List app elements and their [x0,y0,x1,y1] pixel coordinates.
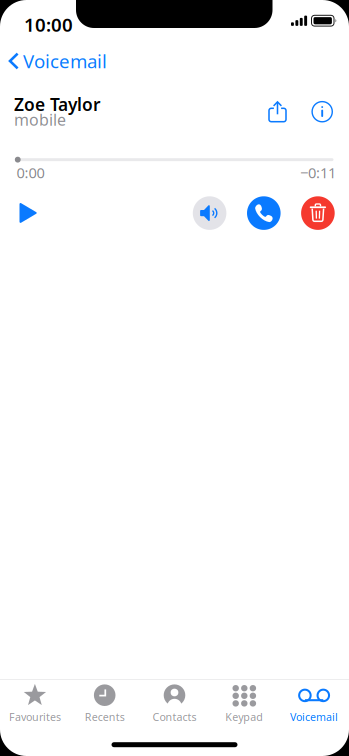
button[interactable]: Keypad [209,680,279,728]
button[interactable]: Contacts [140,680,209,728]
staticText: Keypad [225,710,263,724]
button[interactable]: Favourites [0,680,70,728]
staticText: Favourites [9,710,61,724]
staticText: −0:11 [300,163,336,182]
staticText: Recents [85,710,125,724]
button[interactable]: Speaker [193,196,226,230]
button[interactable]: Play [7,192,49,234]
staticText: Voicemail [23,49,107,73]
staticText: 10:00 [24,12,73,37]
staticText: Zoe Taylor [14,93,101,116]
button[interactable]: Voicemail [0,40,117,82]
button[interactable]: Recents [70,680,140,728]
button[interactable]: Call back [247,196,281,230]
staticText: mobile [14,109,66,130]
button[interactable]: Delete [301,196,335,230]
button[interactable]: Details [301,91,343,133]
staticText: Contacts [152,710,196,724]
button[interactable]: Voicemail [279,680,349,728]
staticText: Voicemail [290,710,338,724]
staticText: 0:00 [16,163,44,182]
button[interactable]: Share [256,91,298,133]
